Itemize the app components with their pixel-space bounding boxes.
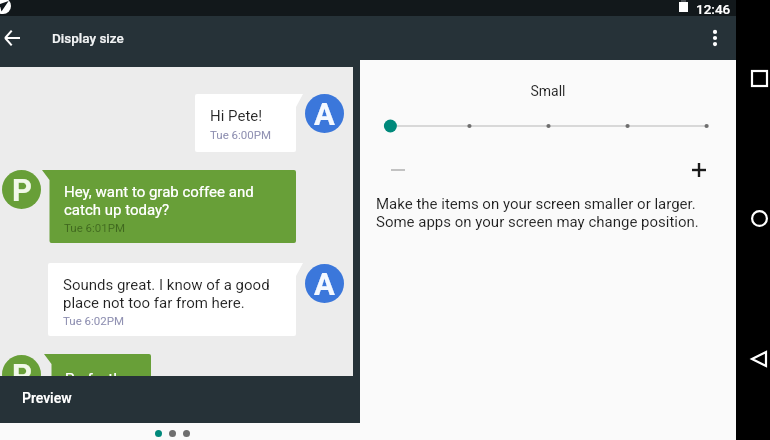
staticText: Hi Pete! [210, 107, 263, 125]
button[interactable]: Display size slider [360, 113, 736, 139]
staticText: place not too far from here. [63, 294, 245, 312]
staticText: Sounds great. I know of a good [63, 276, 270, 294]
staticText: catch up today? [64, 201, 170, 219]
staticText: P [12, 172, 32, 208]
staticText: Perfect! [65, 370, 118, 388]
staticText: Display size [52, 30, 124, 46]
button[interactable]: Home [742, 198, 770, 238]
staticText: Some apps on your screen may change posi… [376, 213, 699, 231]
button[interactable]: Make smaller [376, 148, 420, 192]
staticText: P [12, 357, 32, 393]
button[interactable]: Back [0, 16, 36, 60]
staticText: Small [360, 83, 736, 99]
staticText: A [314, 96, 335, 132]
button[interactable]: Recents [742, 58, 770, 98]
staticText: Make the items on your screen smaller or… [376, 195, 696, 213]
staticText: Tue 6:02PM [63, 314, 125, 327]
button[interactable]: Back [742, 339, 770, 379]
staticText: Tue 6:01PM [64, 221, 126, 234]
staticText: Preview [22, 390, 72, 406]
staticText: A [314, 266, 335, 302]
staticText: 12:46 [696, 1, 731, 17]
button[interactable]: More options [695, 16, 735, 60]
button[interactable]: Make larger [677, 148, 721, 192]
staticText: Tue 6:00PM [210, 128, 272, 141]
staticText: Hey, want to grab coffee and [64, 183, 254, 201]
